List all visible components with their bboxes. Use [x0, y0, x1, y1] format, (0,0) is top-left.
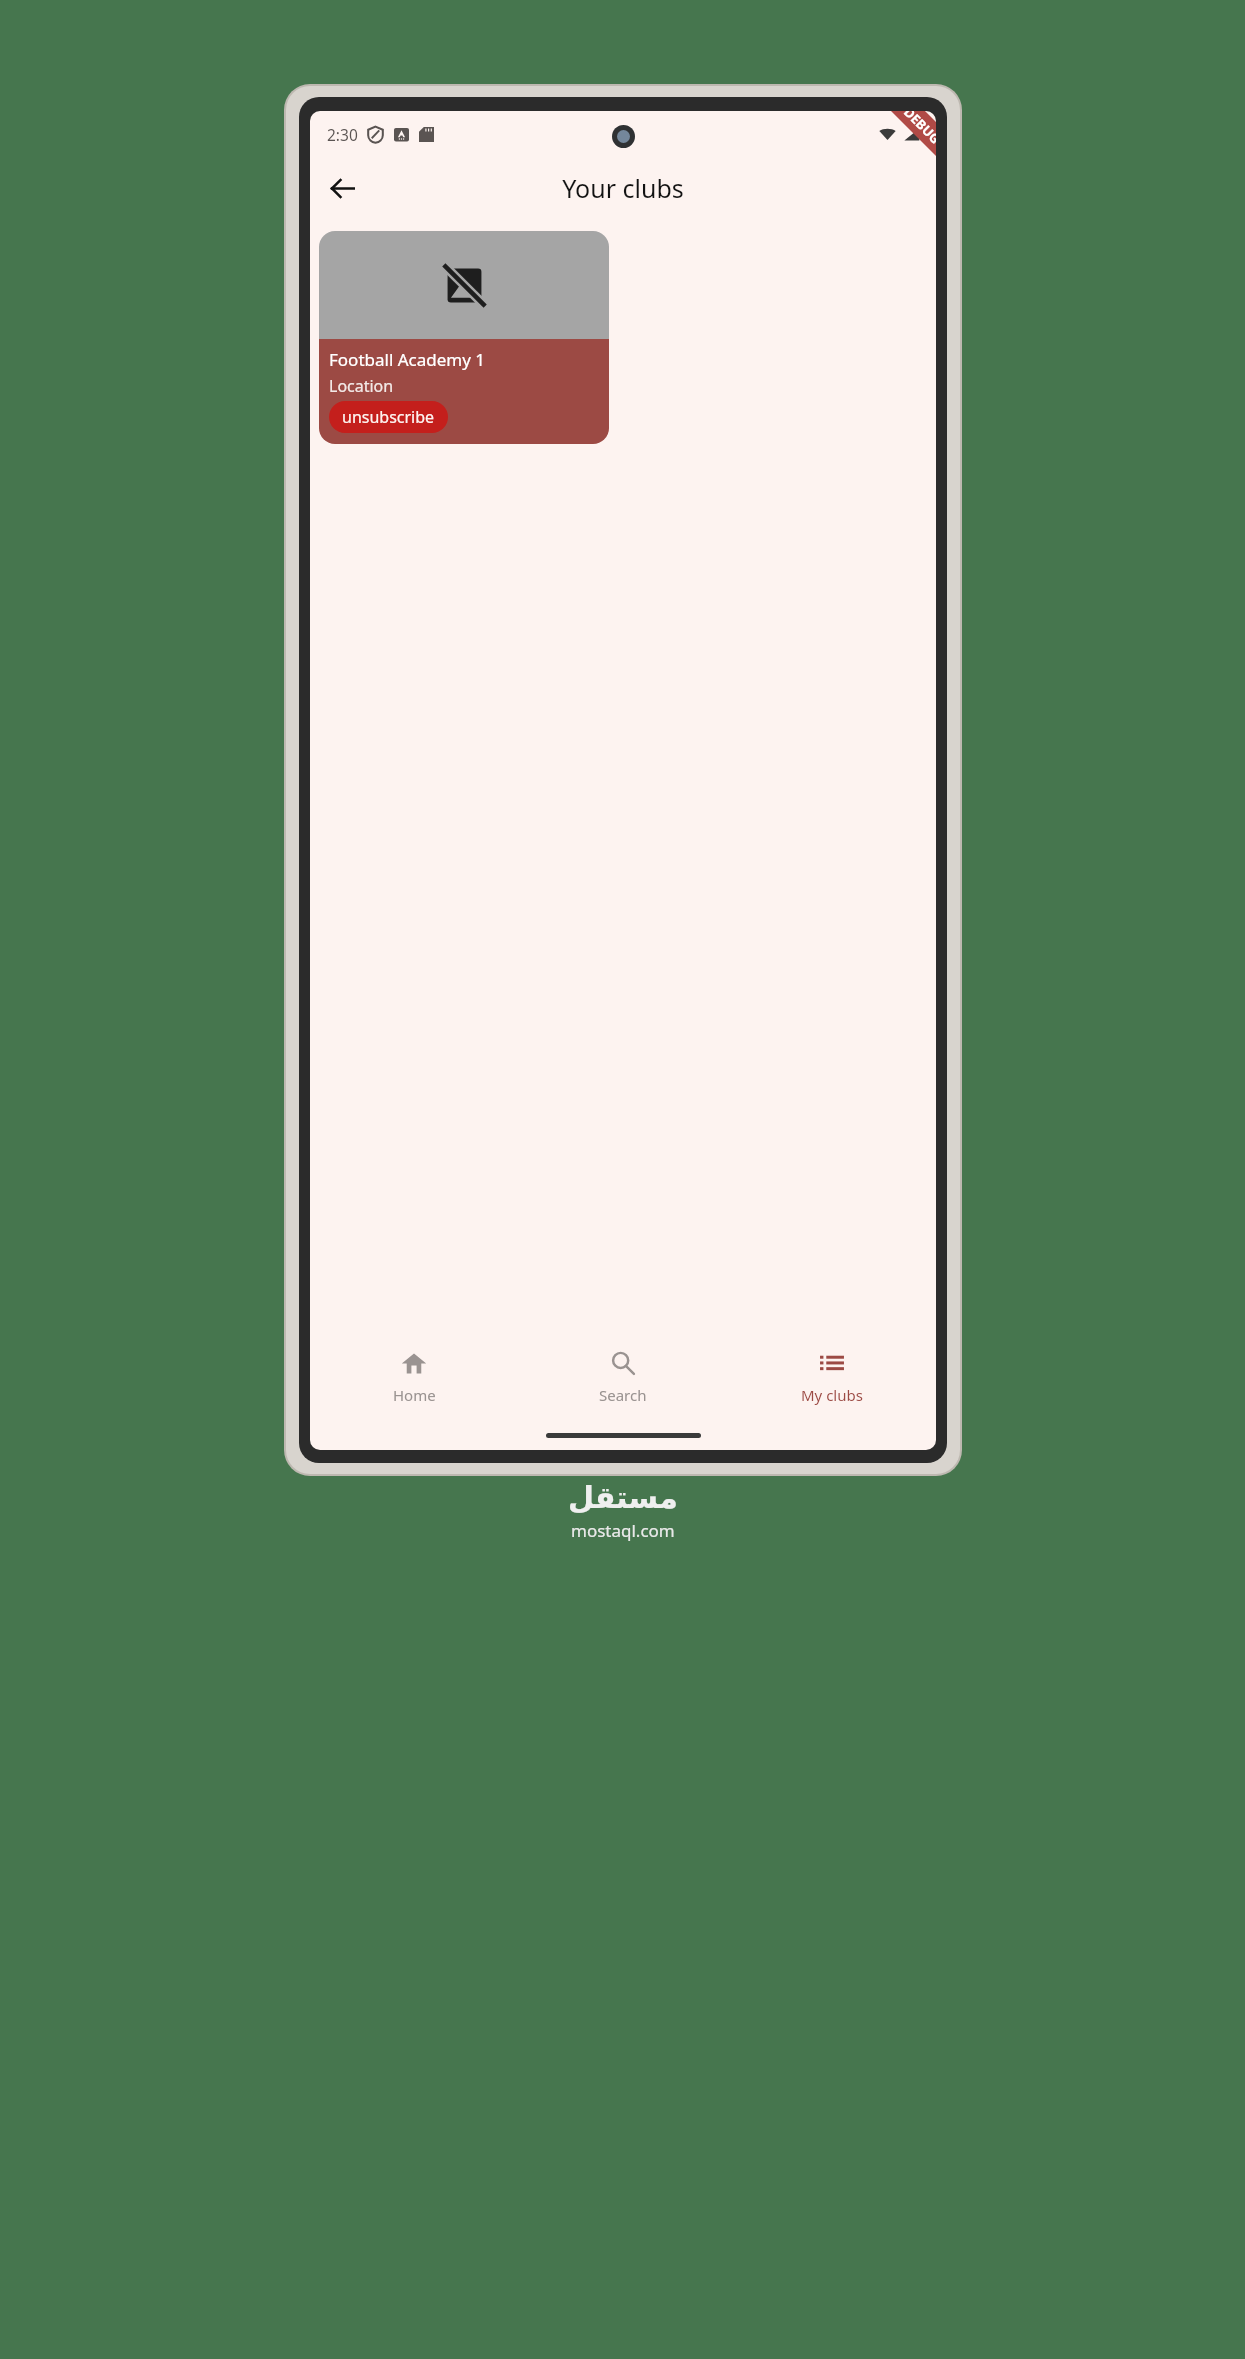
staticText: 2:30	[327, 124, 358, 145]
staticText: Home	[393, 1385, 436, 1405]
button[interactable]: Back	[318, 164, 366, 212]
button[interactable]: My clubs	[727, 1331, 936, 1423]
button[interactable]: Home	[310, 1331, 518, 1423]
staticText: Football Academy 1	[329, 348, 486, 371]
staticText: Location	[329, 375, 394, 397]
staticText: unsubscribe	[342, 406, 435, 428]
staticText: Your clubs	[562, 171, 684, 205]
button[interactable]: Football Academy 1	[319, 231, 609, 444]
staticText: My clubs	[801, 1385, 863, 1405]
button[interactable]: Search	[518, 1331, 727, 1423]
staticText: Search	[599, 1385, 647, 1405]
staticText: mostaql.com	[571, 1519, 675, 1542]
staticText: مستقل	[568, 1480, 678, 1515]
staticText: DEBUG	[900, 111, 936, 148]
button[interactable]: unsubscribe	[329, 401, 448, 433]
